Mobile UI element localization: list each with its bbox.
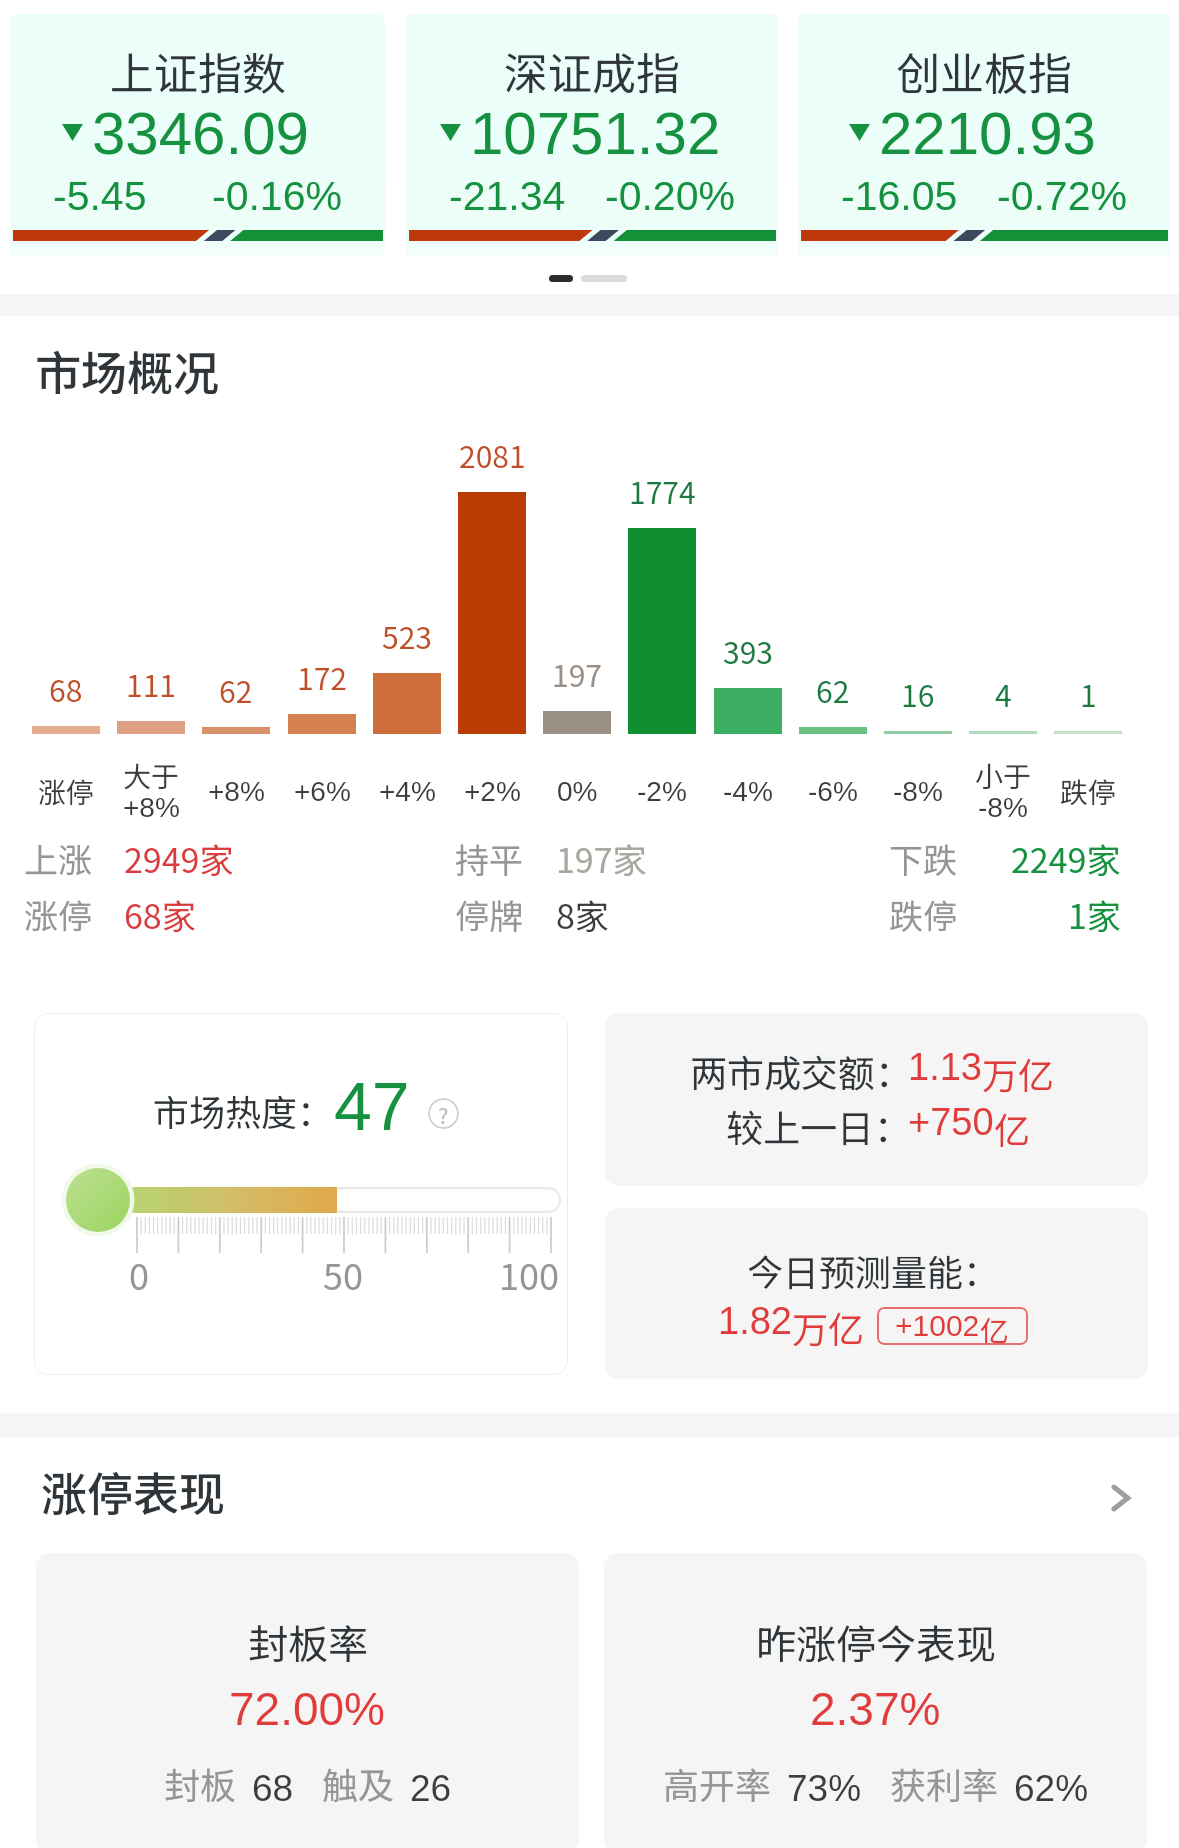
staticText: 0 (129, 1248, 149, 1300)
staticText: 大于 (123, 755, 180, 796)
staticText: 两市成交额： (690, 1044, 912, 1098)
button[interactable]: 昨涨停今表现 (604, 1553, 1147, 1848)
staticText: ? (438, 1098, 449, 1129)
staticText: 16 (901, 672, 935, 715)
staticText: 73% (787, 1768, 862, 1809)
staticText: 2249家 (1011, 834, 1121, 883)
staticText: 172 (297, 655, 347, 698)
staticText: 68 (49, 667, 83, 710)
staticText: +750 (908, 1101, 994, 1143)
staticText: 2949家 (124, 834, 234, 883)
staticText: 上涨 (24, 834, 92, 883)
staticText: -8% (893, 776, 943, 807)
button[interactable]: 深证成指 (406, 14, 778, 260)
staticText: 2081 (459, 433, 526, 476)
button[interactable]: 上证指数 (10, 14, 385, 260)
staticText: 小于 (975, 755, 1032, 796)
staticText: 2.37% (810, 1683, 941, 1734)
staticText: 获利率 (890, 1757, 999, 1809)
button[interactable]: 创业板指 (798, 14, 1170, 260)
staticText: -2% (637, 776, 687, 807)
button[interactable]: 市场热度： (34, 1013, 568, 1375)
staticText: +2% (464, 776, 521, 807)
staticText: 上证指数 (110, 39, 286, 103)
staticText: -8% (978, 792, 1028, 823)
staticText: 下跌 (889, 834, 957, 883)
staticText: -4% (723, 776, 773, 807)
staticText: 100 (499, 1248, 559, 1300)
staticText: +6% (294, 776, 351, 807)
staticText: 197 (552, 652, 602, 695)
staticText: 111 (126, 662, 176, 705)
staticText: +8% (208, 776, 265, 807)
staticText: 跌停 (1060, 771, 1117, 812)
staticText: 1家 (1068, 890, 1121, 939)
staticText: -0.16% (212, 173, 342, 219)
staticText: 持平 (455, 834, 523, 883)
staticText: 深证成指 (504, 39, 680, 103)
staticText: 停牌 (455, 890, 523, 939)
staticText: 涨停 (38, 771, 95, 812)
staticText: 封板 (164, 1757, 237, 1809)
staticText: 亿 (994, 1102, 1031, 1154)
button[interactable]: 今日预测量能： (605, 1208, 1148, 1379)
staticText: -0.72% (997, 173, 1127, 219)
button[interactable]: 帮助 (428, 1098, 459, 1129)
staticText: 跌停 (889, 890, 957, 939)
staticText: 68 (252, 1768, 294, 1809)
button[interactable]: 两市成交额： (605, 1013, 1148, 1186)
staticText: +4% (379, 776, 436, 807)
staticText: 8家 (556, 890, 609, 939)
staticText: 523 (382, 614, 432, 657)
staticText: 393 (723, 629, 773, 672)
staticText: 触及 (322, 1757, 395, 1809)
staticText: 62% (1014, 1768, 1089, 1809)
staticText: 47 (334, 1068, 410, 1144)
staticText: 1.82 (718, 1300, 792, 1342)
staticText: 50 (323, 1248, 363, 1300)
staticText: 0% (557, 776, 598, 807)
staticText: 197家 (556, 834, 647, 883)
staticText: 10751.32 (470, 100, 721, 167)
staticText: 昨涨停今表现 (756, 1613, 996, 1671)
staticText: 62 (816, 668, 850, 711)
staticText: 万亿 (792, 1301, 865, 1353)
staticText: -21.34 (449, 173, 566, 219)
staticText: -0.20% (605, 173, 735, 219)
staticText: 亿 (980, 1308, 1010, 1345)
staticText: 1774 (629, 469, 696, 512)
button[interactable]: 更多 (1100, 1477, 1142, 1519)
staticText: 涨停 (24, 890, 92, 939)
staticText: -5.45 (53, 173, 147, 219)
staticText: 涨停表现 (41, 1458, 225, 1525)
staticText: +1002 (895, 1309, 980, 1343)
button[interactable]: 封板率 (36, 1553, 579, 1848)
staticText: 68家 (124, 890, 196, 939)
staticText: 较上一日： (726, 1099, 911, 1153)
staticText: 26 (410, 1768, 452, 1809)
staticText: 今日预测量能： (747, 1244, 1000, 1296)
staticText: 62 (219, 668, 253, 711)
staticText: 万亿 (982, 1047, 1055, 1099)
staticText: 3346.09 (92, 100, 309, 167)
staticText: 封板率 (248, 1613, 368, 1671)
staticText: 1.13 (908, 1046, 982, 1088)
staticText: 2210.93 (879, 100, 1096, 167)
staticText: 1 (1080, 672, 1097, 715)
staticText: 4 (995, 672, 1012, 715)
staticText: -16.05 (841, 173, 958, 219)
staticText: 市场热度： (153, 1084, 334, 1136)
staticText: 72.00% (229, 1683, 386, 1734)
staticText: 创业板指 (896, 39, 1072, 103)
staticText: -6% (808, 776, 858, 807)
staticText: 高开率 (663, 1757, 772, 1809)
staticText: 市场概况 (35, 337, 219, 404)
staticText: +8% (123, 792, 180, 823)
